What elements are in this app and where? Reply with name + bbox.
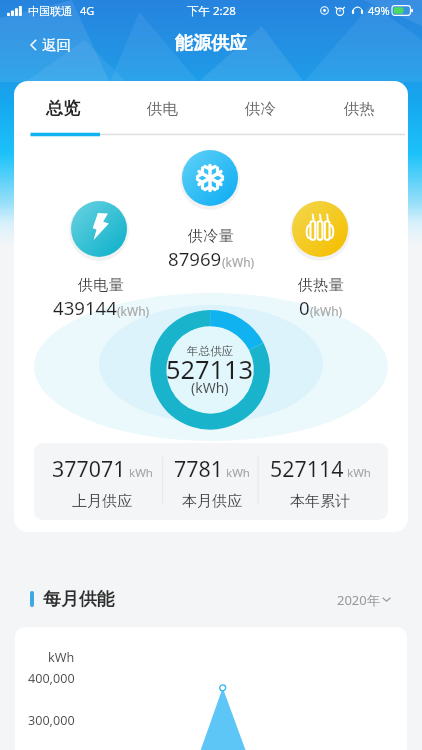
staticText: 供电 bbox=[147, 99, 178, 118]
staticText: 527113 bbox=[166, 352, 254, 387]
staticText: (kWh) bbox=[191, 378, 229, 397]
staticText: kWh bbox=[226, 465, 250, 481]
staticText: kWh bbox=[347, 465, 371, 481]
staticText: 377071 bbox=[52, 454, 126, 483]
staticText: kWh bbox=[48, 649, 75, 666]
button[interactable]: 377071 bbox=[42, 454, 162, 510]
button[interactable]: 2020年 bbox=[334, 588, 394, 610]
staticText: 300,000 bbox=[28, 712, 75, 729]
button[interactable]: 7781 bbox=[152, 454, 272, 510]
staticText: 下午 2:28 bbox=[187, 3, 236, 19]
staticText: 上月供应 bbox=[72, 491, 133, 510]
staticText: 供冷 bbox=[245, 99, 276, 118]
staticText: 527114 bbox=[270, 454, 344, 483]
staticText: 49% bbox=[368, 3, 390, 18]
staticText: 返回 bbox=[42, 36, 71, 54]
button[interactable]: 供电 bbox=[123, 90, 201, 126]
button[interactable]: 供冷 bbox=[221, 90, 299, 126]
staticText: 能源供应 bbox=[175, 32, 247, 55]
staticText: 0 bbox=[299, 295, 310, 320]
staticText: 供热量 bbox=[298, 275, 344, 294]
staticText: 供热 bbox=[344, 99, 375, 118]
button[interactable]: 返回 bbox=[28, 33, 73, 57]
button[interactable]: 527114 bbox=[260, 454, 380, 510]
button[interactable]: 供热 bbox=[320, 90, 398, 126]
staticText: 7781 bbox=[174, 454, 223, 483]
button[interactable]: 总览 bbox=[24, 90, 102, 126]
staticText: 本月供应 bbox=[182, 491, 243, 510]
staticText: 439144 bbox=[53, 295, 117, 320]
staticText: 供冷量 bbox=[188, 226, 234, 245]
staticText: 每月供能 bbox=[43, 588, 115, 610]
staticText: 本年累计 bbox=[290, 491, 351, 510]
staticText: 年总供应 bbox=[187, 344, 234, 359]
staticText: 4G bbox=[80, 3, 95, 18]
staticText: 供电量 bbox=[78, 275, 124, 294]
staticText: 87969 bbox=[168, 246, 222, 271]
staticText: 400,000 bbox=[28, 670, 75, 687]
staticText: kWh bbox=[129, 465, 153, 481]
staticText: (kWh) bbox=[117, 303, 150, 319]
staticText: (kWh) bbox=[222, 254, 255, 270]
staticText: 中国联通 bbox=[28, 4, 72, 18]
staticText: 2020年 bbox=[337, 591, 380, 607]
staticText: (kWh) bbox=[310, 303, 343, 319]
staticText: 总览 bbox=[46, 98, 80, 119]
